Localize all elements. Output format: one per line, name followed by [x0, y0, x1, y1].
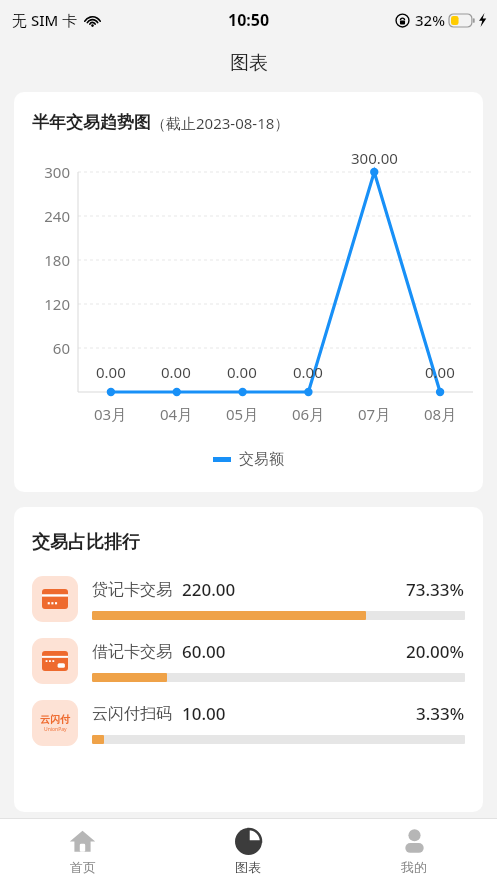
staticText: 0.00 — [425, 362, 455, 382]
staticText: 32% — [415, 10, 445, 30]
staticText: 08月 — [424, 404, 457, 424]
staticText: 10.00 — [182, 702, 226, 725]
staticText: 无 SIM 卡 — [12, 10, 78, 30]
staticText: 0.00 — [161, 362, 191, 382]
staticText: 0.00 — [293, 362, 323, 382]
staticText: 05月 — [226, 404, 259, 424]
staticText: 60.00 — [182, 640, 226, 663]
staticText: UnionPay — [44, 726, 67, 733]
button[interactable]: 我的 — [331, 819, 497, 883]
staticText: 04月 — [160, 404, 193, 424]
staticText: 300.00 — [351, 148, 398, 168]
staticText: 贷记卡交易 — [92, 580, 172, 600]
staticText: 交易额 — [239, 450, 284, 469]
button[interactable]: 借记卡交易 — [32, 638, 465, 684]
staticText: 180 — [14, 250, 70, 270]
staticText: 06月 — [292, 404, 325, 424]
staticText: （截止2023-08-18） — [151, 113, 290, 133]
staticText: 半年交易趋势图 — [32, 112, 151, 133]
button[interactable]: 图表 — [165, 819, 331, 883]
staticText: 220.00 — [182, 578, 236, 601]
staticText: 图表 — [230, 51, 268, 75]
staticText: 240 — [14, 206, 70, 226]
staticText: 03月 — [94, 404, 127, 424]
staticText: 0.00 — [227, 362, 257, 382]
staticText: 云闪付 — [40, 713, 70, 726]
staticText: 300 — [14, 162, 70, 182]
staticText: 借记卡交易 — [92, 642, 172, 662]
staticText: 图表 — [235, 859, 261, 875]
button[interactable]: 贷记卡交易 — [32, 576, 465, 622]
staticText: 73.33% — [406, 578, 465, 601]
staticText: 20.00% — [406, 640, 465, 663]
staticText: 60 — [14, 338, 70, 358]
staticText: 120 — [14, 294, 70, 314]
staticText: 07月 — [358, 404, 391, 424]
staticText: 10:50 — [228, 9, 270, 31]
staticText: 交易占比排行 — [32, 531, 140, 554]
staticText: 云闪付扫码 — [92, 704, 172, 724]
staticText: 0.00 — [96, 362, 126, 382]
button[interactable]: 首页 — [0, 819, 165, 883]
staticText: 我的 — [401, 859, 427, 875]
button[interactable]: 云闪付 — [32, 700, 465, 746]
staticText: 3.33% — [416, 702, 465, 725]
staticText: 首页 — [70, 859, 96, 875]
